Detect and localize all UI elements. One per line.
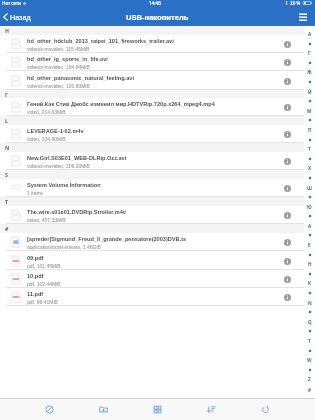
button[interactable]: Refresh [261, 399, 270, 420]
button[interactable]: Sort [207, 399, 216, 420]
staticText: pdf, 102.44MiB [27, 281, 61, 287]
button[interactable]: Info [280, 74, 294, 88]
staticText: Г [5, 91, 8, 98]
staticText: Х [308, 165, 312, 171]
button[interactable]: 11.pdf [0, 288, 304, 306]
staticText: Г [308, 50, 311, 56]
staticText: pdf, 101.45MiB [27, 263, 61, 269]
staticText: video, 457.33MiB [27, 217, 66, 223]
button[interactable]: Info [280, 181, 294, 195]
staticText: video/x-msvideo, 209.20MiB [27, 163, 90, 169]
staticText: # [5, 225, 9, 232]
staticText: 10.pdf [27, 273, 44, 279]
staticText: video, 234.90MiB [27, 136, 66, 142]
staticText: video/x-msvideo, 115.45MiB [27, 46, 90, 52]
staticText: W [307, 357, 312, 363]
button[interactable]: Section index [304, 26, 315, 398]
button[interactable]: System Volume Information [0, 179, 304, 197]
button[interactable]: New.Girl.S03E01_WEB-DLRip.Ozz.avi [0, 152, 304, 170]
staticText: video, 214.03MiB [27, 109, 66, 115]
staticText: Нет сети [2, 0, 21, 6]
staticText: 20 % [290, 0, 301, 6]
staticText: 11.pdf [27, 291, 44, 297]
button[interactable]: Info [280, 100, 294, 114]
staticText: LEVERAGE-1-02.m4v [27, 128, 84, 134]
staticText: System Volume Information [27, 182, 101, 188]
staticText: hd_other_lg_sports_in_life.avi [27, 56, 108, 62]
button[interactable]: Назад [0, 10, 35, 24]
button[interactable]: Info [280, 127, 294, 141]
staticText: T [5, 198, 8, 205]
staticText: Т [308, 146, 311, 152]
staticText: hd_other_panasonic_natural_feeling.avi [27, 75, 134, 81]
staticText: video/x-msvideo, 120.80MiB [27, 83, 90, 89]
staticText: П [308, 127, 312, 133]
staticText: L [5, 117, 8, 124]
staticText: pdf, 96.41MiB [27, 299, 58, 305]
button[interactable]: Info [280, 55, 294, 69]
staticText: New.Girl.S03E01_WEB-DLRip.Ozz.avi [27, 155, 127, 161]
staticText: # [308, 387, 311, 393]
button[interactable]: hd_other_hdclub_2013_taipei_101_firework… [0, 35, 304, 53]
staticText: A [308, 223, 312, 229]
staticText: А [308, 31, 312, 37]
staticText: Ш [307, 185, 312, 191]
button[interactable]: LEVERAGE-1-02.m4v [0, 125, 304, 143]
staticText: E [308, 242, 311, 248]
button[interactable]: 09.pdf [0, 251, 304, 270]
staticText: Гений.Как Стив Джобс изменил мир.HDTVRip… [27, 101, 215, 107]
staticText: video/x-msvideo, 194.94MiB [27, 64, 90, 70]
staticText: application/octet-stream, 1.48GiB [27, 244, 101, 250]
staticText: 1 items [27, 190, 44, 196]
staticText: K [308, 280, 312, 286]
button[interactable]: Menu [296, 10, 310, 24]
staticText: hd_other_hdclub_2013_taipei_101_firework… [27, 38, 174, 44]
button[interactable]: Select [45, 399, 54, 420]
button[interactable]: Info [280, 254, 294, 268]
button[interactable]: [apreder]Sigmund_Freud_Il_grande_pensato… [0, 233, 304, 251]
staticText: Назад [10, 13, 31, 21]
staticText: 14:46 [149, 0, 161, 6]
button[interactable]: Info [280, 272, 294, 286]
button[interactable]: Гений.Как Стив Джобс изменил мир.HDTVRip… [0, 98, 304, 116]
staticText: H [308, 261, 312, 267]
staticText: М [307, 108, 312, 114]
button[interactable]: hd_other_lg_sports_in_life.avi [0, 53, 304, 71]
button[interactable]: 10.pdf [0, 270, 304, 288]
staticText: [apreder]Sigmund_Freud_Il_grande_pensato… [27, 236, 187, 242]
staticText: T [308, 338, 311, 344]
staticText: USB-накопитель [126, 13, 189, 21]
button[interactable]: New folder [99, 399, 108, 420]
staticText: Z [308, 376, 311, 382]
button[interactable]: Info [280, 208, 294, 222]
staticText: N [308, 300, 312, 306]
button[interactable]: hd_other_panasonic_natural_feeling.avi [0, 71, 304, 90]
staticText: Й [308, 89, 312, 95]
staticText: Ж [307, 69, 312, 75]
staticText: N [5, 144, 10, 151]
button[interactable]: Grid view [153, 399, 162, 420]
staticText: Ю [307, 204, 312, 210]
staticText: H [5, 27, 9, 34]
staticText: The.wire.s01e01.DVDRip.Stroller.m4v [27, 209, 126, 215]
button[interactable]: The.wire.s01e01.DVDRip.Stroller.m4v [0, 206, 304, 224]
button[interactable]: Info [280, 235, 294, 249]
button[interactable]: Info [280, 290, 294, 304]
button[interactable]: Info [280, 37, 294, 51]
staticText: Q [308, 319, 312, 325]
staticText: 09.pdf [27, 255, 44, 261]
staticText: S [5, 171, 8, 178]
button[interactable]: Info [280, 154, 294, 168]
